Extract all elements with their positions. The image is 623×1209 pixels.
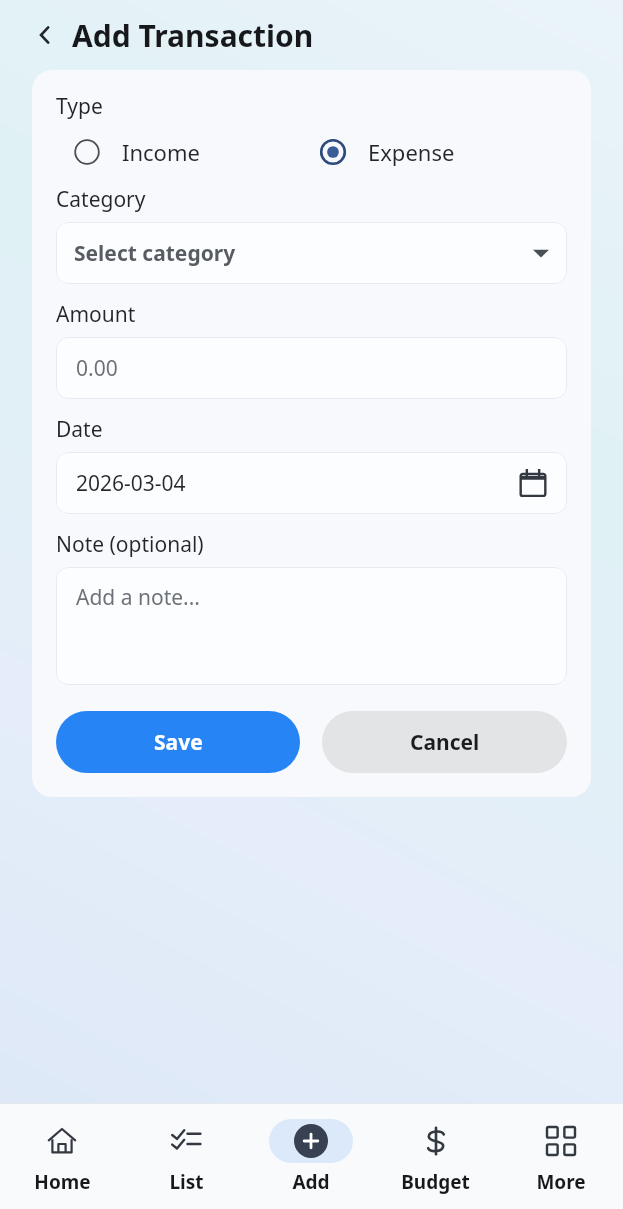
staticText: Home [34,1169,91,1195]
staticText: Type [56,92,103,121]
button[interactable]: Home [0,1104,124,1209]
button[interactable]: Add a note... [56,567,567,685]
button[interactable]: Budget [373,1104,498,1209]
staticText: Budget [401,1169,470,1195]
staticText: Add Transaction [72,15,314,56]
staticText: 2026-03-04 [76,469,186,498]
button[interactable]: More [498,1104,623,1209]
staticText: Expense [368,137,455,167]
button[interactable]: 2026-03-04 [56,452,567,514]
staticText: Add a note... [76,583,200,612]
button[interactable]: Cancel [322,711,567,773]
button[interactable]: Expense [320,137,567,167]
button[interactable]: Income [74,137,320,167]
button[interactable]: Add [248,1104,373,1209]
staticText: Amount [56,300,136,329]
staticText: 0.00 [76,354,118,383]
staticText: Note (optional) [56,530,204,559]
staticText: Cancel [410,728,480,757]
button[interactable]: Select category [56,222,567,284]
button[interactable]: Save [56,711,300,773]
staticText: Select category [74,239,236,268]
staticText: Date [56,415,103,444]
button[interactable]: List [124,1104,248,1209]
staticText: Save [154,728,203,757]
staticText: Add [292,1169,330,1195]
button[interactable]: 0.00 [56,337,567,399]
button[interactable]: Back [28,18,62,52]
staticText: Income [122,137,200,167]
staticText: List [169,1169,204,1195]
staticText: Category [56,185,146,214]
staticText: More [536,1169,586,1195]
